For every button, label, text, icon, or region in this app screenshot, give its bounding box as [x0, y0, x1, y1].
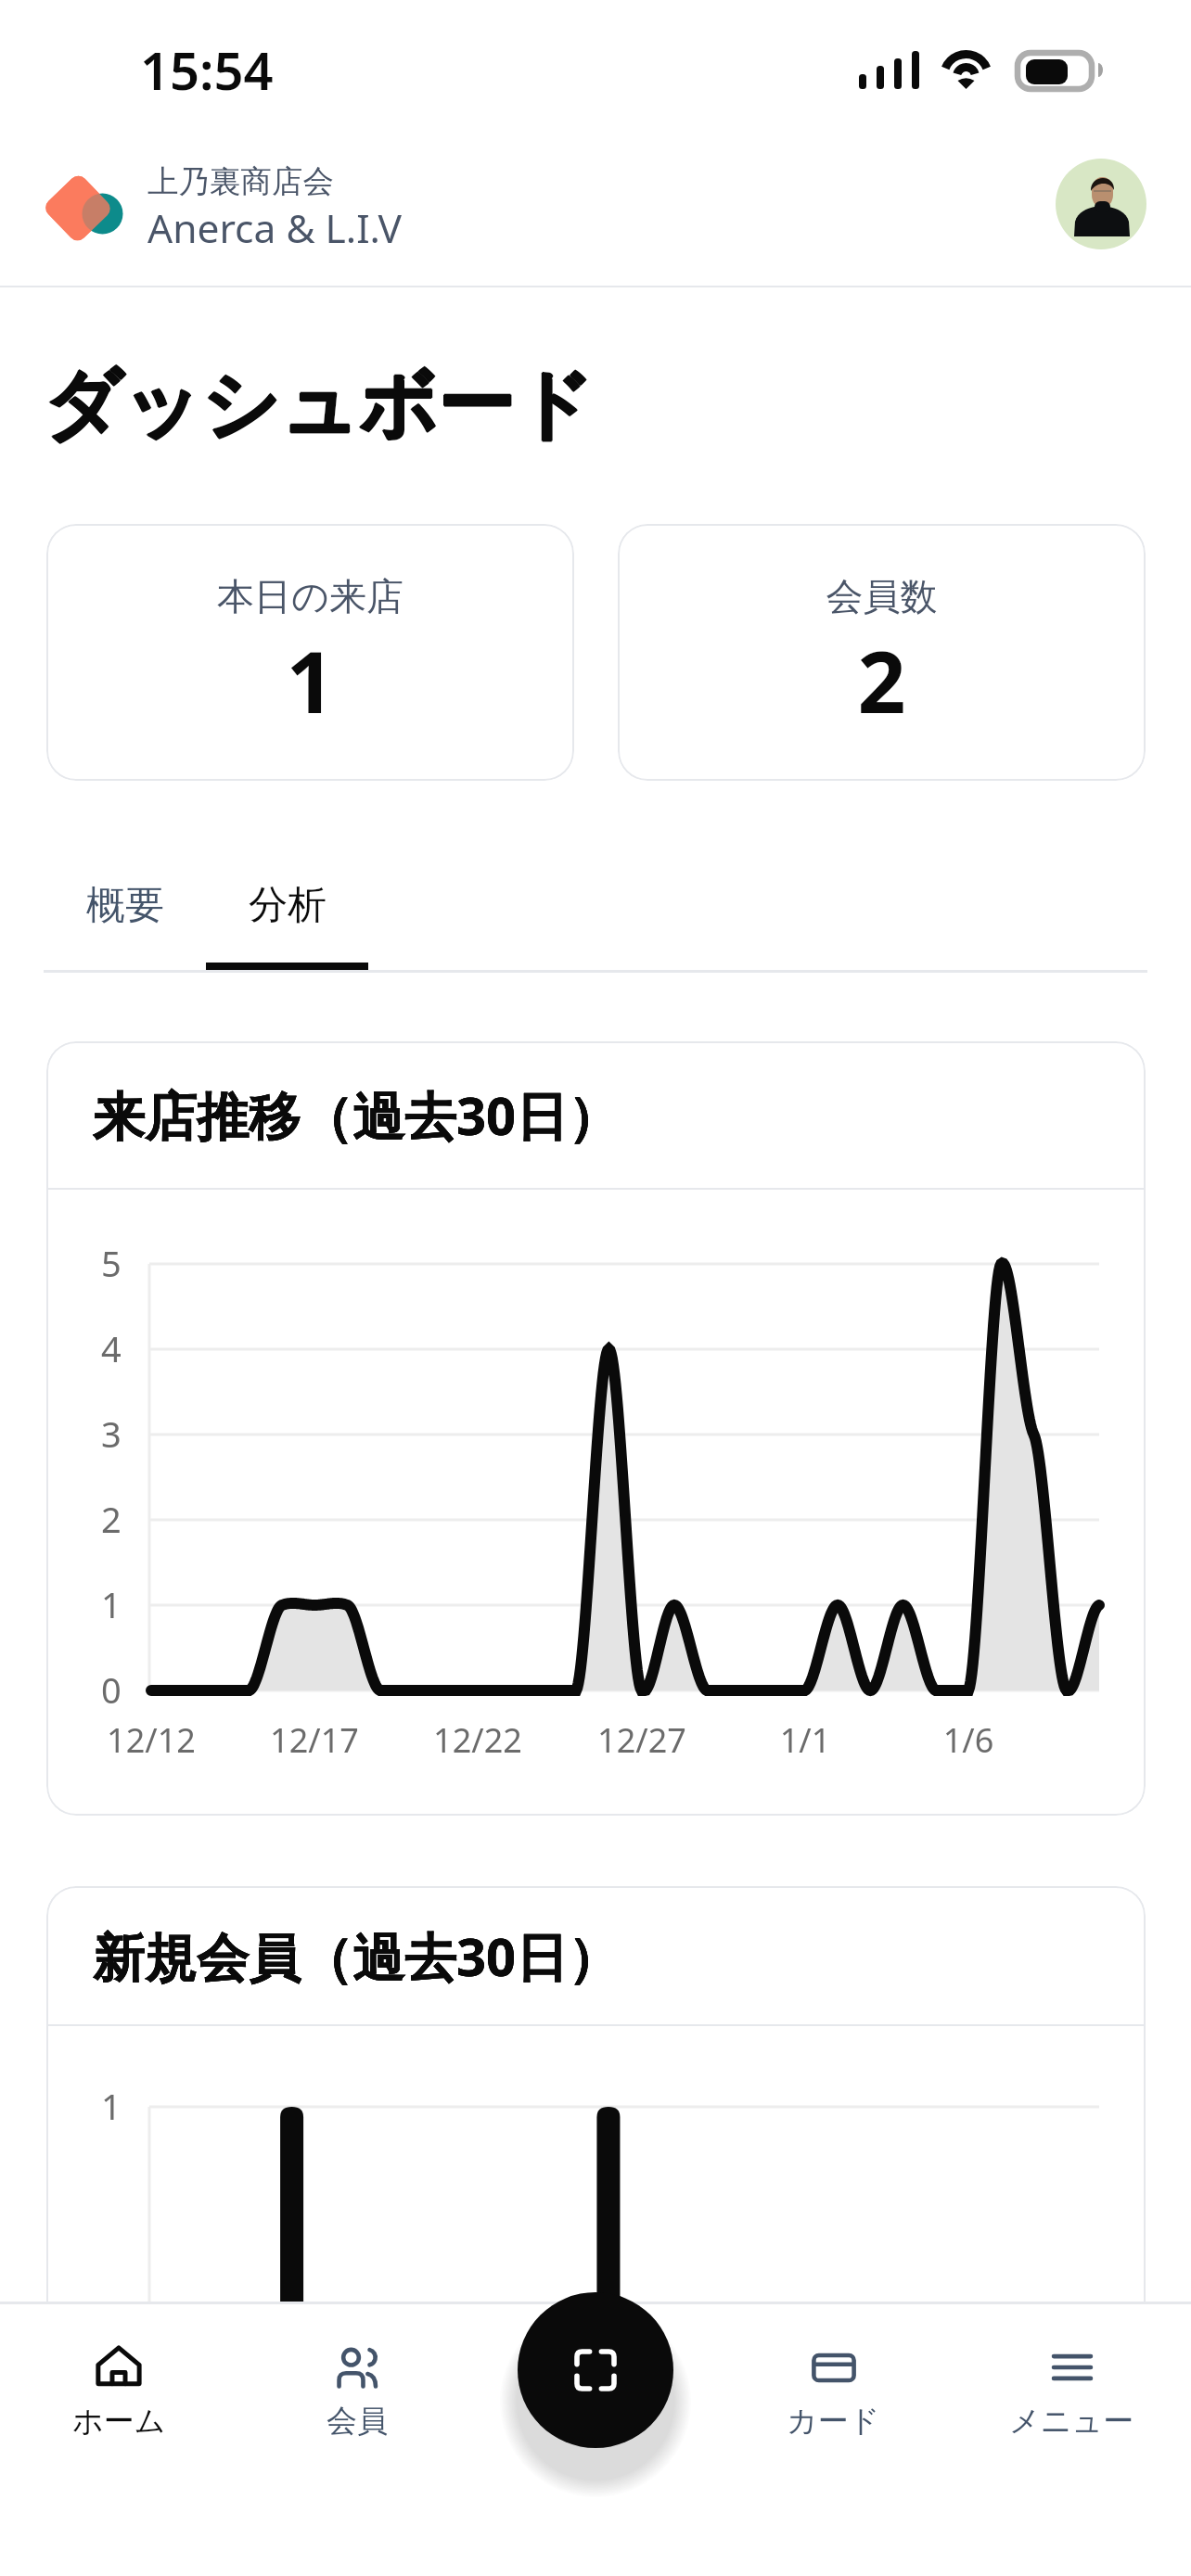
button[interactable]: 会員数	[618, 524, 1146, 781]
staticText: 会員数	[618, 573, 1146, 619]
staticText: 1/6	[894, 1717, 1043, 1763]
staticText: 2	[618, 623, 1146, 738]
staticText: 0	[101, 1665, 122, 1714]
staticText: 1/1	[731, 1717, 879, 1763]
staticText: 1	[46, 623, 574, 738]
button[interactable]: 会員	[237, 2304, 476, 2508]
button[interactable]: ホーム	[0, 2304, 237, 2508]
staticText: 本日の来店	[46, 573, 574, 619]
button[interactable]: 概要	[44, 881, 206, 970]
staticText: メニュー	[1009, 2402, 1134, 2441]
staticText: 12/22	[403, 1717, 552, 1763]
staticText: ダッシュボード	[45, 357, 595, 454]
staticText: 来店推移（過去30日）	[93, 1079, 621, 1150]
staticText: ダッシュボード	[44, 357, 594, 454]
button[interactable]: Scan	[518, 2292, 673, 2448]
staticText: ダッシュボード	[43, 357, 593, 454]
staticText: ダッシュボード	[44, 356, 594, 453]
staticText: 12/27	[568, 1717, 716, 1763]
staticText: 3	[101, 1409, 122, 1458]
staticText: 新規会員（過去30日）	[93, 1920, 621, 1991]
staticText: 来店推移（過去30日）	[93, 1079, 621, 1150]
button[interactable]: Profile	[1056, 159, 1146, 249]
staticText: 4	[101, 1324, 122, 1372]
staticText: ホーム	[72, 2402, 166, 2441]
staticText: 来店推移（過去30日）	[93, 1079, 621, 1150]
staticText: 会員	[327, 2402, 388, 2441]
button[interactable]: カード	[714, 2304, 953, 2508]
button[interactable]: メニュー	[953, 2304, 1191, 2508]
staticText: 2	[101, 1495, 122, 1543]
staticText: 来店推移（過去30日）	[93, 1079, 621, 1150]
staticText: 新規会員（過去30日）	[93, 1920, 621, 1991]
staticText: 新規会員（過去30日）	[93, 1920, 621, 1991]
staticText: 1	[101, 2082, 122, 2130]
staticText: 新規会員（過去30日）	[93, 1920, 621, 1991]
staticText: 概要	[86, 881, 164, 930]
staticText: Anerca & L.I.V	[147, 201, 402, 255]
staticText: 1	[101, 1580, 122, 1628]
staticText: ダッシュボード	[44, 358, 594, 455]
staticText: カード	[787, 2402, 880, 2441]
staticText: 15:54	[140, 34, 274, 105]
staticText: 来店推移（過去30日）	[93, 1079, 621, 1150]
staticText: 12/17	[240, 1717, 389, 1763]
button[interactable]: 分析	[206, 881, 368, 970]
staticText: 上乃裏商店会	[147, 162, 334, 201]
button[interactable]: 本日の来店	[46, 524, 574, 781]
staticText: 新規会員（過去30日）	[93, 1920, 621, 1991]
staticText: 分析	[249, 881, 327, 930]
staticText: 12/12	[77, 1717, 225, 1763]
staticText: 5	[101, 1239, 122, 1287]
